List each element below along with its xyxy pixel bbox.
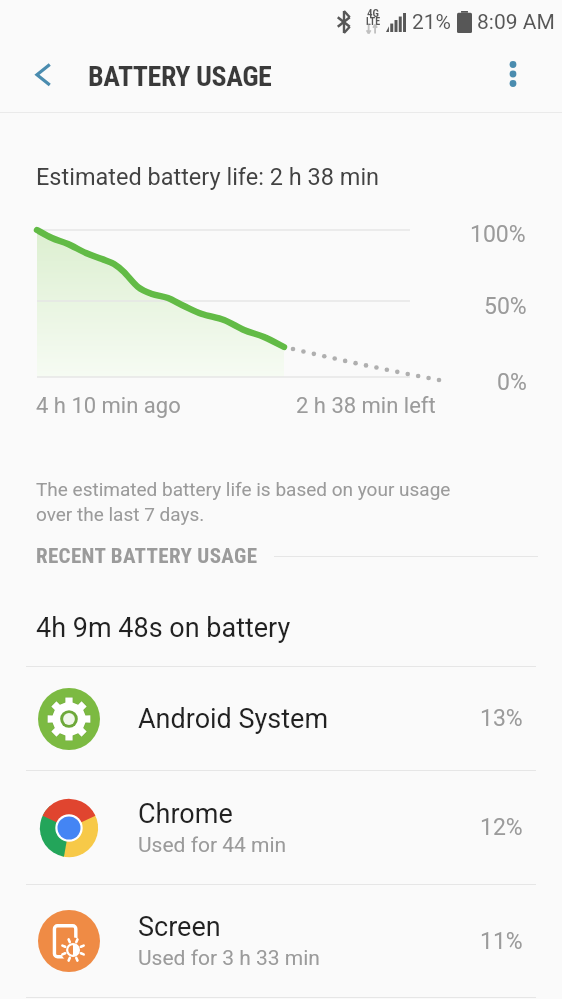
staticText: 4h 9m 48s on battery xyxy=(36,612,291,644)
button[interactable]: Chrome xyxy=(0,771,562,884)
staticText: Android System xyxy=(138,703,329,735)
button[interactable]: More options xyxy=(496,57,530,91)
staticText: 50% xyxy=(484,293,527,320)
staticText: 100% xyxy=(470,221,526,248)
staticText: Chrome xyxy=(138,798,233,830)
button[interactable]: Android System xyxy=(0,667,562,770)
staticText: Estimated battery life: 2 h 38 min xyxy=(36,163,380,191)
button[interactable]: Screen xyxy=(0,885,562,997)
staticText: 8:09 AM xyxy=(477,10,555,35)
staticText: 0% xyxy=(497,369,527,396)
staticText: BATTERY USAGE xyxy=(88,60,272,93)
staticText: 12% xyxy=(480,814,523,841)
staticText: RECENT BATTERY USAGE xyxy=(36,544,258,569)
staticText: 4G xyxy=(367,7,379,20)
staticText: 4 h 10 min ago xyxy=(36,393,181,419)
staticText: Used for 44 min xyxy=(138,833,287,858)
staticText: Screen xyxy=(138,911,221,943)
staticText: Used for 3 h 33 min xyxy=(138,946,320,971)
staticText: 13% xyxy=(480,705,523,732)
button[interactable]: Back xyxy=(28,58,60,90)
staticText: LTE xyxy=(366,16,381,28)
staticText: The estimated battery life is based on y… xyxy=(36,478,451,525)
staticText: 21% xyxy=(412,10,451,35)
staticText: 11% xyxy=(480,928,523,955)
staticText: 2 h 38 min left xyxy=(296,393,436,419)
